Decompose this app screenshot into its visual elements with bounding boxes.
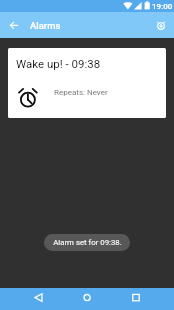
staticText: Repeats: Never: [54, 88, 108, 97]
button[interactable]: Back: [1, 12, 27, 38]
staticText: Wake up! - 09:38: [16, 57, 101, 70]
button[interactable]: Recents: [125, 288, 147, 310]
button[interactable]: Back: [27, 288, 49, 310]
staticText: Alarm set for 09:38.: [53, 238, 122, 247]
button[interactable]: Add alarm: [148, 12, 174, 38]
staticText: 19:00: [152, 2, 173, 11]
button[interactable]: Home: [76, 288, 98, 310]
staticText: Alarms: [30, 20, 61, 31]
button[interactable]: Wake up! - 09:38: [8, 48, 166, 118]
